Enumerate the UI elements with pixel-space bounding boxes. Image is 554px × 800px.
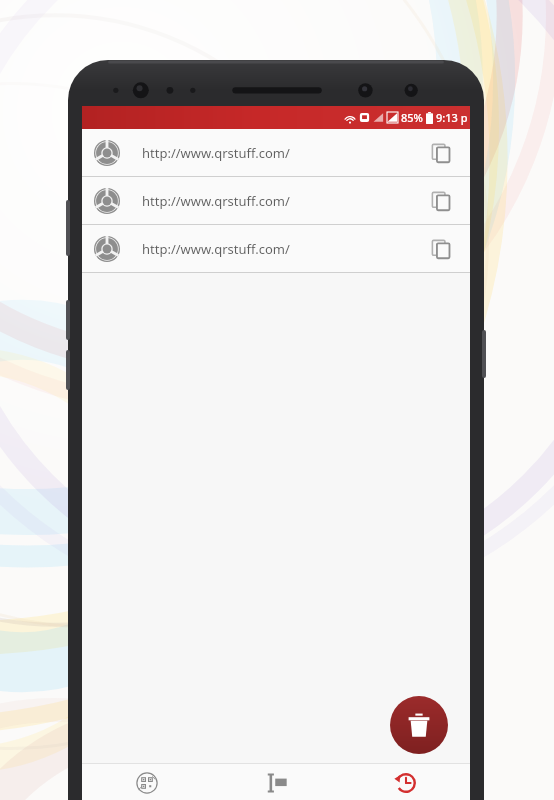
button[interactable]: Delete history <box>390 696 448 754</box>
button[interactable]: Copy link <box>424 136 458 170</box>
button[interactable]: Scan <box>82 764 212 800</box>
button[interactable]: Copy link <box>424 232 458 266</box>
button[interactable]: History <box>341 764 470 800</box>
button[interactable]: http://www.qrstuff.com/ <box>82 225 470 272</box>
staticText: 9:13 p <box>436 110 468 125</box>
button[interactable]: Copy link <box>424 184 458 218</box>
staticText: 85% <box>401 110 423 125</box>
button[interactable]: http://www.qrstuff.com/ <box>82 177 470 224</box>
staticText: http://www.qrstuff.com/ <box>142 144 290 162</box>
button[interactable]: http://www.qrstuff.com/ <box>82 129 470 176</box>
staticText: http://www.qrstuff.com/ <box>142 240 290 258</box>
staticText: http://www.qrstuff.com/ <box>142 192 290 210</box>
button[interactable]: Generate <box>212 764 341 800</box>
